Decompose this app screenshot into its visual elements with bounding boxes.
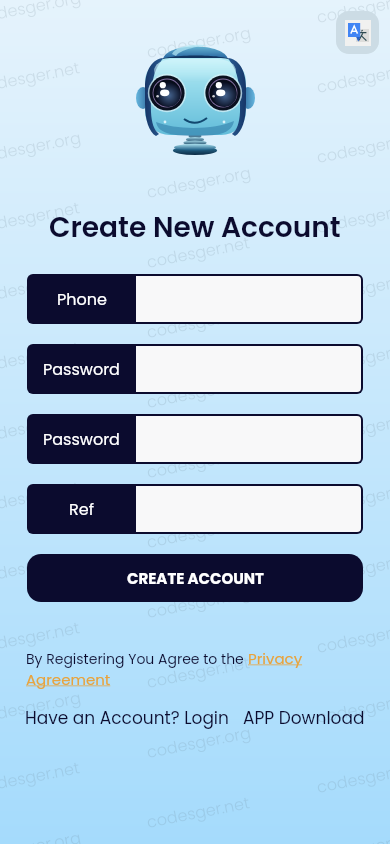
staticText: codesger.net bbox=[315, 336, 390, 378]
staticText: codesger.net bbox=[0, 616, 82, 658]
button[interactable]: Agreement bbox=[26, 669, 111, 690]
staticText: codesger.org bbox=[145, 721, 253, 763]
staticText: codesger.org bbox=[315, 0, 390, 28]
button[interactable]: Have an Account? Login bbox=[25, 706, 229, 730]
staticText: codesger.org bbox=[0, 686, 83, 728]
staticText: Create New Account bbox=[49, 208, 341, 247]
staticText: APP Download bbox=[243, 706, 365, 730]
staticText: codesger.org bbox=[145, 441, 253, 483]
staticText: codesger.net bbox=[145, 231, 252, 273]
button[interactable]: APP Download bbox=[243, 706, 365, 730]
staticText: codesger.net bbox=[145, 651, 252, 693]
staticText: codesger.net bbox=[315, 616, 390, 658]
staticText: codesger.org bbox=[0, 546, 83, 588]
staticText: codesger.net bbox=[0, 336, 82, 378]
staticText: Ref bbox=[69, 498, 94, 520]
staticText: codesger.org bbox=[315, 406, 390, 448]
staticText: CREATE ACCOUNT bbox=[127, 568, 264, 589]
staticText: codesger.org bbox=[145, 581, 253, 623]
staticText: codesger.org bbox=[0, 826, 83, 844]
staticText: codesger.net bbox=[145, 511, 252, 553]
staticText: By Registering You Agree to the bbox=[26, 649, 248, 669]
staticText: codesger.org bbox=[0, 0, 83, 28]
button[interactable]: CREATE ACCOUNT bbox=[27, 554, 363, 602]
staticText: Password bbox=[43, 428, 120, 450]
staticText: codesger.org bbox=[0, 126, 83, 168]
staticText: codesger.org bbox=[145, 301, 253, 343]
staticText: codesger.net bbox=[315, 756, 390, 798]
staticText: codesger.org bbox=[0, 406, 83, 448]
staticText: codesger.net bbox=[0, 56, 82, 98]
staticText: codesger.org bbox=[315, 126, 390, 168]
button[interactable]: Privacy bbox=[248, 648, 303, 669]
staticText: codesger.net bbox=[315, 56, 390, 98]
staticText: codesger.net bbox=[0, 476, 82, 518]
staticText: codesger.org bbox=[315, 266, 390, 308]
button[interactable]: Password bbox=[27, 344, 363, 394]
staticText: codesger.net bbox=[315, 196, 390, 238]
staticText: codesger.net bbox=[0, 756, 82, 798]
staticText: Have an Account? Login bbox=[25, 706, 229, 730]
staticText: codesger.net bbox=[145, 791, 252, 833]
staticText: codesger.net bbox=[315, 476, 390, 518]
button[interactable]: Phone bbox=[27, 274, 363, 324]
staticText: codesger.org bbox=[145, 161, 253, 203]
button[interactable]: Translate bbox=[336, 11, 379, 54]
staticText: codesger.org bbox=[145, 21, 253, 63]
staticText: codesger.net bbox=[145, 371, 252, 413]
staticText: codesger.net bbox=[0, 196, 82, 238]
staticText: Phone bbox=[57, 288, 107, 310]
staticText: codesger.org bbox=[0, 266, 83, 308]
staticText: codesger.org bbox=[315, 686, 390, 728]
staticText: codesger.net bbox=[145, 91, 252, 133]
button[interactable]: Password bbox=[27, 414, 363, 464]
staticText: codesger.org bbox=[315, 546, 390, 588]
button[interactable]: Ref bbox=[27, 484, 363, 534]
staticText: Password bbox=[43, 358, 120, 380]
